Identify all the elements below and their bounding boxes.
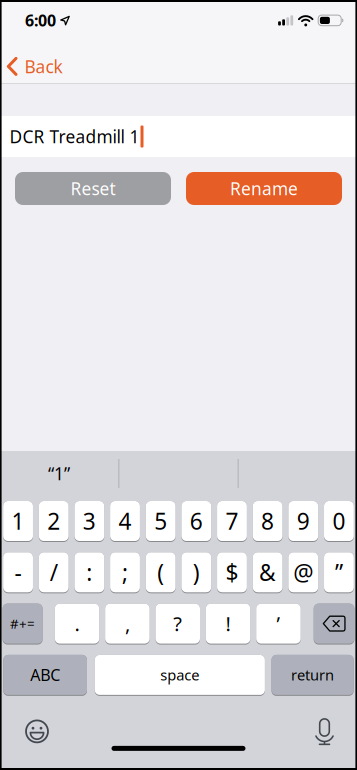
button[interactable]: , — [105, 604, 150, 645]
staticText: , — [125, 610, 130, 637]
staticText: 1 — [12, 506, 25, 536]
button[interactable]: Delete — [314, 604, 354, 645]
button[interactable]: ) — [181, 552, 211, 593]
staticText: ? — [173, 610, 182, 637]
button[interactable]: DCR Treadmill 1 — [0, 116, 357, 157]
button[interactable]: 7 — [217, 501, 247, 542]
staticText: ” — [335, 557, 343, 587]
staticText: ABC — [30, 664, 60, 685]
staticText: - — [15, 557, 22, 587]
staticText: 4 — [118, 506, 131, 536]
button[interactable]: ’ — [256, 604, 301, 645]
staticText: ’ — [276, 610, 280, 637]
button[interactable]: Emoji — [25, 719, 49, 743]
button[interactable]: 5 — [146, 501, 176, 542]
button[interactable]: “1” — [0, 451, 118, 496]
button[interactable]: 8 — [253, 501, 282, 542]
button[interactable]: ” — [324, 552, 354, 593]
button[interactable]: $ — [217, 552, 247, 593]
button[interactable]: Dictate — [314, 719, 335, 745]
button[interactable]: 3 — [74, 501, 104, 542]
staticText: 0 — [332, 506, 345, 536]
staticText: ! — [226, 610, 231, 637]
staticText: 5 — [154, 506, 167, 536]
staticText: #+= — [10, 615, 35, 632]
button[interactable]: ! — [206, 604, 250, 645]
staticText: return — [291, 665, 334, 685]
button[interactable]: 6 — [181, 501, 211, 542]
button[interactable]: - — [3, 552, 33, 593]
staticText: “1” — [48, 462, 70, 485]
staticText: / — [50, 557, 58, 587]
button[interactable]: 9 — [288, 501, 318, 542]
button[interactable]: #+= — [3, 604, 43, 645]
button[interactable]: . — [55, 604, 99, 645]
button[interactable]: 4 — [110, 501, 140, 542]
staticText: 8 — [261, 506, 274, 536]
staticText: 6:00 — [25, 10, 56, 31]
button[interactable]: Reset — [15, 172, 171, 205]
staticText: DCR Treadmill 1 — [9, 125, 139, 148]
staticText: & — [259, 557, 276, 587]
button[interactable]: Rename — [186, 172, 342, 205]
staticText: 7 — [225, 506, 238, 536]
staticText: Rename — [230, 177, 298, 200]
staticText: : — [86, 557, 92, 587]
staticText: $ — [225, 557, 238, 587]
staticText: 2 — [47, 506, 60, 536]
button[interactable]: ? — [155, 604, 200, 645]
staticText: 3 — [83, 506, 96, 536]
button[interactable]: 1 — [3, 501, 33, 542]
staticText: . — [74, 610, 79, 637]
staticText: Reset — [70, 177, 115, 200]
staticText: 6 — [190, 506, 203, 536]
button[interactable]: return — [271, 655, 354, 696]
staticText: @ — [293, 557, 313, 587]
button[interactable]: ABC — [3, 655, 87, 696]
button[interactable]: 0 — [324, 501, 354, 542]
staticText: ) — [193, 557, 200, 587]
button[interactable]: space — [95, 655, 265, 696]
staticText: ; — [122, 557, 128, 587]
button[interactable]: & — [253, 552, 282, 593]
button[interactable]: ( — [146, 552, 176, 593]
button[interactable]: Back — [0, 55, 62, 78]
button[interactable]: 2 — [39, 501, 69, 542]
button[interactable]: ; — [110, 552, 140, 593]
button[interactable]: : — [74, 552, 104, 593]
button[interactable]: Suggestion — [239, 451, 357, 496]
staticText: space — [160, 665, 199, 685]
button[interactable]: / — [39, 552, 69, 593]
staticText: ( — [157, 557, 164, 587]
staticText: 9 — [297, 506, 310, 536]
button[interactable]: @ — [288, 552, 318, 593]
staticText: Back — [24, 55, 62, 78]
